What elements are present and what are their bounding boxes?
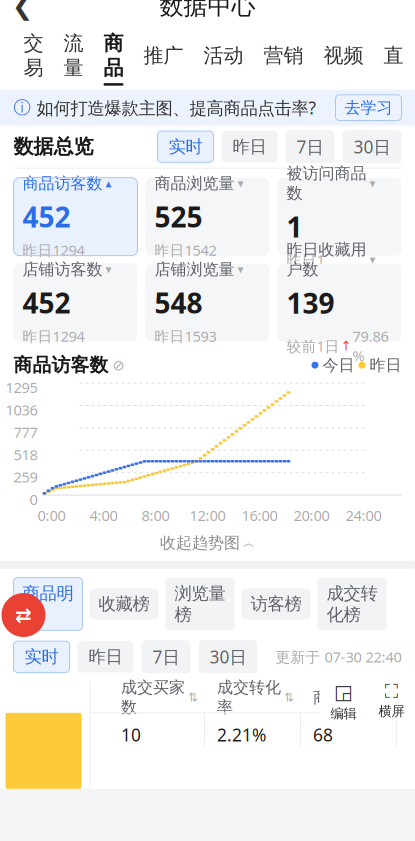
button[interactable]: 推广	[133, 37, 193, 77]
button[interactable]: 实时	[13, 641, 69, 672]
button[interactable]: 商品浏览量	[145, 178, 269, 256]
button[interactable]: 营销	[253, 37, 313, 77]
staticText: 实时	[168, 136, 202, 157]
staticText: 525	[154, 198, 202, 235]
button[interactable]: 成交转化榜	[317, 578, 386, 630]
staticText: 79.86%	[352, 326, 388, 365]
staticText: 777	[13, 422, 37, 442]
staticText: 今日	[322, 355, 354, 375]
staticText: ▾	[237, 176, 243, 190]
button[interactable]: 切换账号	[1, 593, 45, 637]
staticText: 7日	[296, 135, 323, 158]
staticText: 推广	[143, 43, 183, 68]
staticText: 24:00	[345, 506, 381, 525]
staticText: 数据中心	[159, 0, 255, 21]
button[interactable]: 7日	[141, 640, 190, 673]
button[interactable]: 昨日	[221, 131, 277, 162]
staticText: 编辑	[330, 705, 356, 722]
staticText: 收藏榜	[98, 593, 149, 615]
staticText: 店铺访客数	[22, 259, 102, 279]
button[interactable]: 浏览量榜	[165, 578, 234, 630]
button[interactable]: 30日	[198, 640, 257, 673]
button[interactable]: 访客榜	[241, 588, 310, 620]
button[interactable]: 实时	[157, 131, 213, 162]
button[interactable]: 店铺访客数	[13, 264, 137, 342]
staticText: 商品明细	[22, 583, 73, 625]
staticText: 昨日1294	[22, 326, 84, 346]
staticText: 商品收	[313, 687, 361, 707]
button[interactable]: 直	[373, 37, 413, 77]
button[interactable]: 30日	[342, 130, 401, 163]
button[interactable]: ⓘ	[0, 90, 415, 126]
staticText: 成交买家数	[121, 678, 185, 717]
staticText: ▾	[105, 262, 111, 276]
staticText: ▴	[105, 176, 111, 190]
staticText: 数据总览	[13, 134, 93, 159]
staticText: 交易	[23, 31, 43, 80]
button[interactable]: 成交转化率	[205, 682, 301, 712]
button[interactable]: 昨日	[77, 641, 133, 672]
staticText: ⓘ	[13, 97, 30, 118]
staticText: 流量	[63, 31, 83, 80]
staticText: 0:00	[37, 506, 65, 525]
staticText: 成交转化率	[217, 678, 281, 717]
staticText: 30日	[353, 135, 390, 158]
staticText: 商品访客数	[13, 354, 108, 377]
staticText: 商品	[103, 31, 123, 80]
staticText: ▾	[369, 253, 375, 266]
staticText: 访客榜	[250, 593, 301, 615]
staticText: 视频	[323, 43, 363, 68]
button[interactable]: 收起趋势图	[0, 525, 415, 561]
button[interactable]: 昨日收藏用户数	[277, 264, 401, 342]
staticText: ↑	[340, 338, 351, 353]
staticText: ⊘	[112, 357, 124, 373]
staticText: 昨日1294	[22, 240, 84, 260]
staticText: 店铺浏览量	[154, 259, 234, 279]
button[interactable]: 收藏榜	[89, 588, 158, 620]
button[interactable]: 返回	[0, 0, 45, 26]
staticText: 518	[13, 445, 37, 464]
staticText: 昨日1542	[154, 240, 216, 260]
staticText: 139	[286, 284, 334, 321]
staticText: 昨日	[369, 355, 401, 375]
staticText: ⇄	[15, 604, 32, 626]
staticText: 浏览量榜	[174, 583, 225, 625]
button[interactable]: 商品明细	[13, 578, 82, 630]
staticText: 452	[22, 198, 70, 235]
button[interactable]: 商品访客数	[13, 178, 137, 256]
staticText: 更新于 07-30 22:40	[275, 647, 401, 667]
staticText: 实时	[24, 646, 58, 667]
button[interactable]: 活动	[193, 37, 253, 77]
button[interactable]: 商品	[93, 25, 133, 90]
staticText: 548	[154, 284, 202, 321]
button[interactable]: 商品收	[301, 682, 397, 712]
staticText: 横屏	[378, 703, 404, 720]
button[interactable]: 店铺浏览量	[145, 264, 269, 342]
button[interactable]: ◲	[319, 682, 367, 720]
staticText: ◲	[334, 681, 353, 703]
staticText: ⇅	[284, 690, 294, 704]
staticText: 昨日	[232, 136, 266, 157]
staticText: 昨日收藏用户数	[286, 240, 366, 279]
staticText: 2.21%	[217, 723, 266, 746]
staticText: 昨日	[88, 646, 122, 667]
button[interactable]: 交易	[13, 25, 53, 90]
staticText: 16:00	[241, 506, 277, 525]
staticText: 10	[121, 723, 141, 746]
staticText: 较前1日	[286, 336, 339, 356]
button[interactable]: 流量	[53, 25, 93, 90]
button[interactable]: 视频	[313, 37, 373, 77]
button[interactable]: 成交买家数	[109, 682, 205, 712]
staticText: 452	[22, 284, 70, 321]
staticText: 30日	[209, 645, 246, 668]
button[interactable]: 被访问商品数	[277, 178, 401, 256]
staticText: 商品浏览量	[154, 173, 234, 193]
button[interactable]: 7日	[285, 130, 334, 163]
staticText: 7日	[152, 645, 179, 668]
button[interactable]: ⛶	[367, 682, 415, 720]
staticText: 4:00	[89, 506, 117, 525]
staticText: 成交转化榜	[326, 583, 377, 625]
staticText: 0	[29, 490, 37, 509]
staticText: ⛶	[385, 683, 398, 701]
staticText: ❮	[12, 0, 33, 20]
